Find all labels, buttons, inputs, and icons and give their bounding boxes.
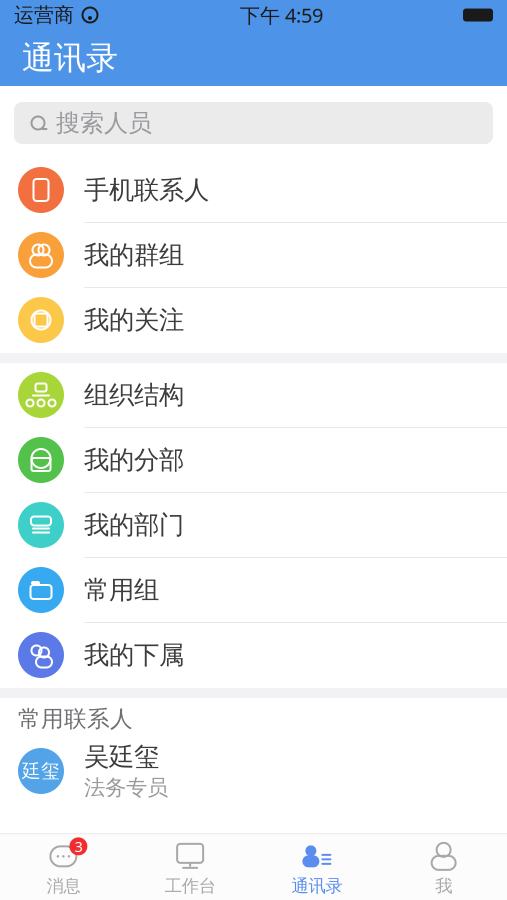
staticText: 通讯录 xyxy=(22,38,118,78)
staticText: 常用联系人 xyxy=(18,705,133,733)
staticText: 工作台 xyxy=(165,875,216,897)
button[interactable]: 通讯录 xyxy=(253,834,380,900)
staticText: 我的群组 xyxy=(84,239,184,270)
button[interactable]: 组织结构 xyxy=(0,363,507,428)
staticText: 搜索人员 xyxy=(56,108,152,138)
staticText: 运营商 xyxy=(14,3,74,27)
button[interactable]: 我的关注 xyxy=(0,288,507,353)
staticText: 我的关注 xyxy=(84,304,184,335)
button[interactable]: 廷玺 xyxy=(0,740,507,802)
button[interactable]: 工作台 xyxy=(127,834,254,900)
button[interactable]: 手机联系人 xyxy=(0,158,507,223)
staticText: 消息 xyxy=(46,875,80,897)
staticText: 3 xyxy=(74,837,82,856)
button[interactable]: 常用组 xyxy=(0,558,507,623)
staticText: 手机联系人 xyxy=(84,174,209,205)
staticText: 我的下属 xyxy=(84,639,184,670)
staticText: 廷玺 xyxy=(22,759,60,782)
button[interactable]: 我的部门 xyxy=(0,493,507,558)
staticText: 常用组 xyxy=(84,574,159,605)
staticText: 法务专员 xyxy=(84,774,168,801)
button[interactable]: 我 xyxy=(380,834,507,900)
staticText: 我 xyxy=(435,875,452,897)
staticText: 通讯录 xyxy=(291,875,342,897)
staticText: 我的分部 xyxy=(84,444,184,475)
button[interactable]: 我的群组 xyxy=(0,223,507,288)
button[interactable]: 我的分部 xyxy=(0,428,507,493)
staticText: 组织结构 xyxy=(84,379,184,410)
staticText: 下午 4:59 xyxy=(240,2,323,28)
staticText: 我的部门 xyxy=(84,509,184,540)
button[interactable]: 3 xyxy=(0,834,127,900)
staticText: 吴廷玺 xyxy=(84,741,159,772)
button[interactable]: 我的下属 xyxy=(0,623,507,688)
